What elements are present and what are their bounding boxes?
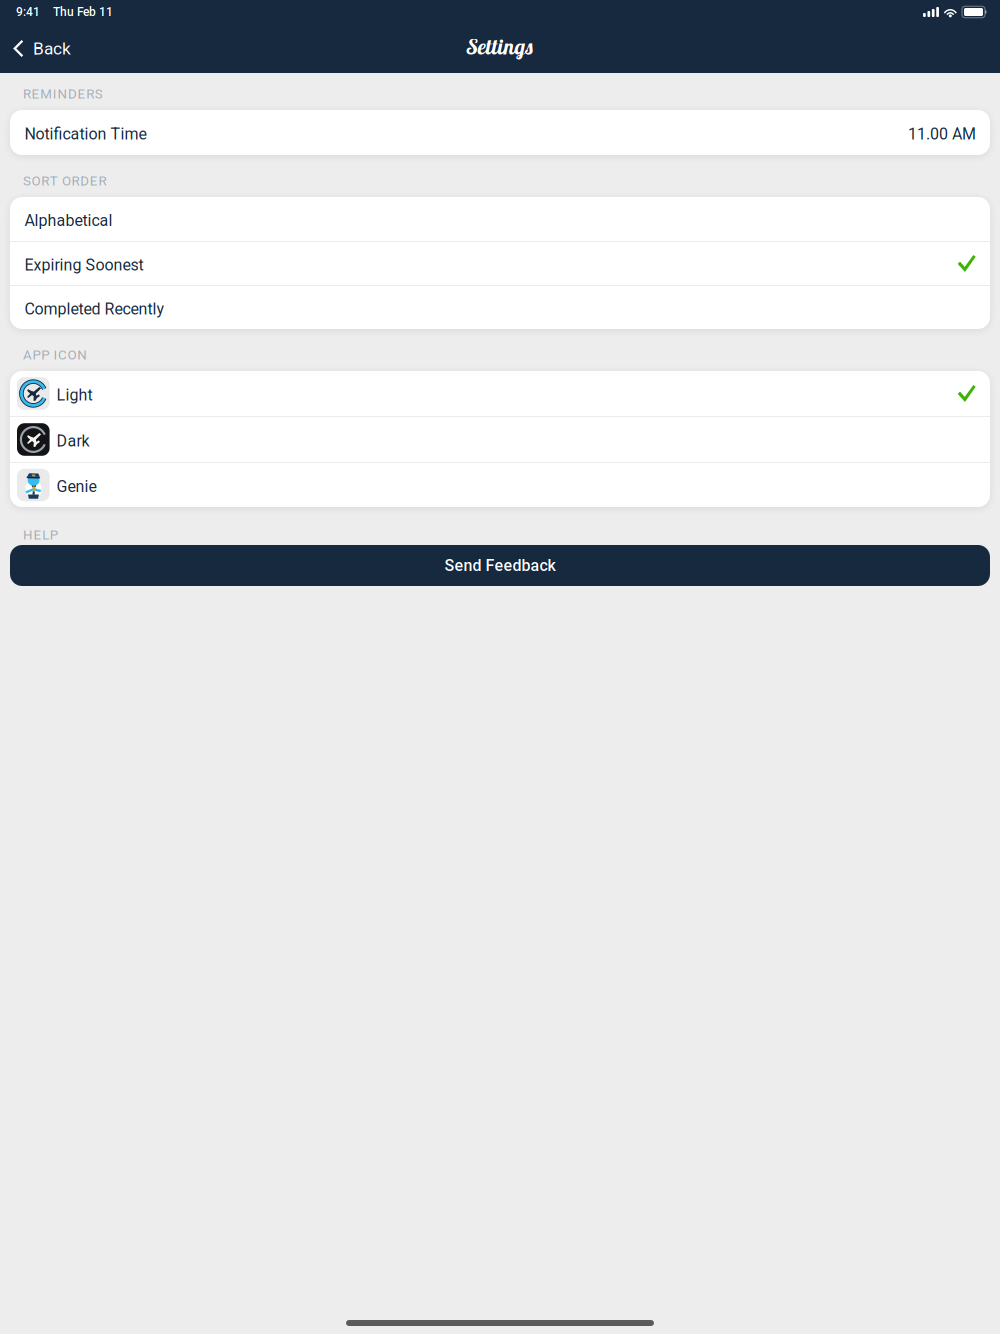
button[interactable]: Dark	[10, 417, 990, 462]
button[interactable]: Light	[10, 371, 990, 416]
staticText: Back	[33, 38, 71, 59]
button[interactable]: Send Feedback	[10, 545, 990, 586]
staticText: Completed Recently	[24, 300, 164, 318]
staticText: Alphabetical	[24, 211, 112, 230]
button[interactable]: Expiring Soonest	[10, 242, 990, 285]
staticText: Settings	[466, 33, 533, 60]
staticText: Thu Feb 11	[53, 5, 113, 19]
button[interactable]: Alphabetical	[10, 197, 990, 241]
button[interactable]: Completed Recently	[10, 286, 990, 329]
staticText: Dark	[57, 432, 90, 450]
staticText: Expiring Soonest	[24, 256, 143, 274]
staticText: REMINDERS	[23, 86, 103, 102]
button[interactable]: Back	[0, 24, 83, 73]
button[interactable]: Genie	[10, 463, 990, 507]
staticText: Light	[57, 386, 93, 404]
staticText: Send Feedback	[444, 556, 555, 575]
staticText: APP ICON	[23, 347, 87, 363]
staticText: Genie	[57, 477, 97, 496]
staticText: SORT ORDER	[23, 173, 106, 189]
staticText: 11.00 AM	[908, 125, 976, 143]
staticText: HELP	[23, 527, 58, 543]
staticText: 9:41	[16, 5, 40, 19]
button[interactable]: Notification Time	[10, 110, 990, 155]
staticText: Notification Time	[24, 125, 146, 143]
